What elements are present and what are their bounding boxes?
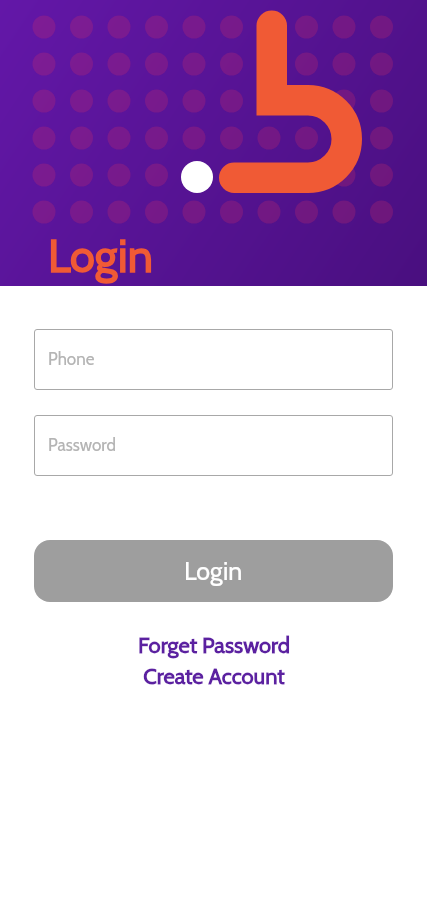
button[interactable]: Login <box>34 540 393 602</box>
button[interactable]: Create Account <box>0 663 427 690</box>
staticText: Forget Password <box>138 632 290 659</box>
button[interactable]: Phone <box>34 329 393 390</box>
staticText: Phone <box>48 349 95 370</box>
button[interactable]: Password <box>34 415 393 476</box>
staticText: Login <box>48 229 153 284</box>
button[interactable]: Forget Password <box>0 632 427 659</box>
staticText: Create Account <box>143 663 285 690</box>
staticText: Login <box>184 556 243 586</box>
staticText: Password <box>48 435 116 456</box>
